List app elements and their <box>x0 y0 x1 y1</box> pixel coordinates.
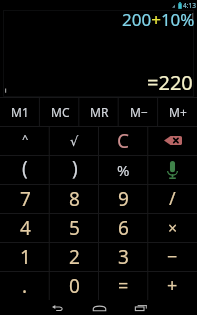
button[interactable]: ^ <box>0 126 50 155</box>
staticText: 200+10% <box>122 8 195 31</box>
button[interactable]: 5 <box>50 213 99 242</box>
staticText: 9 <box>118 186 129 212</box>
button[interactable]: 3 <box>99 242 148 271</box>
staticText: 8 <box>69 186 80 212</box>
button[interactable]: Home <box>78 300 120 315</box>
button[interactable]: 0 <box>50 271 99 300</box>
button[interactable]: % <box>99 155 148 184</box>
staticText: MC <box>51 104 70 120</box>
staticText: − <box>167 244 178 269</box>
staticText: 4:13 <box>183 1 196 10</box>
button[interactable]: Voice input <box>148 155 197 184</box>
button[interactable]: / <box>148 184 197 213</box>
staticText: = <box>118 273 129 298</box>
staticText: ^ <box>22 131 29 146</box>
staticText: 2 <box>69 244 80 270</box>
staticText: . <box>22 273 28 299</box>
button[interactable]: MR <box>80 97 119 126</box>
staticText: 5 <box>69 215 80 241</box>
button[interactable]: M1 <box>0 97 40 126</box>
staticText: 7 <box>20 186 31 212</box>
other: Voice input <box>167 161 178 179</box>
button[interactable]: ) <box>50 155 99 184</box>
staticText: ( <box>22 155 28 181</box>
staticText: =220 <box>147 69 193 96</box>
staticText: 3 <box>118 244 129 270</box>
staticText: 6 <box>118 215 129 241</box>
button[interactable]: Backspace <box>148 126 197 155</box>
button[interactable]: = <box>99 271 148 300</box>
button[interactable]: Recents <box>120 300 162 315</box>
staticText: M+ <box>169 104 187 120</box>
button[interactable]: M− <box>119 97 158 126</box>
staticText: + <box>167 273 178 298</box>
button[interactable]: 2 <box>50 242 99 271</box>
staticText: C <box>117 128 130 154</box>
staticText: M− <box>130 104 148 120</box>
button[interactable]: ( <box>0 155 50 184</box>
staticText: 0 <box>69 273 80 299</box>
button[interactable]: 4 <box>0 213 50 242</box>
button[interactable]: M+ <box>158 97 197 126</box>
button[interactable]: 7 <box>0 184 50 213</box>
staticText: % <box>117 160 130 180</box>
button[interactable]: . <box>0 271 50 300</box>
button[interactable]: MC <box>40 97 80 126</box>
button[interactable]: √ <box>50 126 99 155</box>
button[interactable]: 1 <box>0 242 50 271</box>
button[interactable]: × <box>148 213 197 242</box>
button[interactable]: + <box>148 271 197 300</box>
button[interactable]: 9 <box>99 184 148 213</box>
staticText: × <box>168 217 178 239</box>
button[interactable]: C <box>99 126 148 155</box>
staticText: MR <box>90 104 109 120</box>
button[interactable]: 8 <box>50 184 99 213</box>
staticText: ) <box>72 155 78 181</box>
other: Backspace <box>164 136 182 145</box>
button[interactable]: Back <box>36 300 78 315</box>
staticText: 4 <box>20 215 31 241</box>
staticText: / <box>169 186 176 211</box>
button[interactable]: 6 <box>99 213 148 242</box>
staticText: √ <box>70 134 79 149</box>
button[interactable]: − <box>148 242 197 271</box>
staticText: M1 <box>11 104 29 120</box>
staticText: 1 <box>20 244 31 270</box>
